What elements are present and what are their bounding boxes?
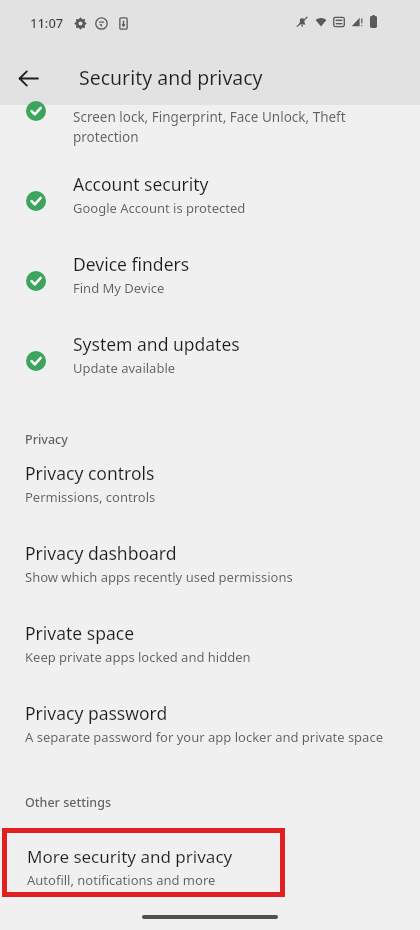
button[interactable]: Back <box>8 58 48 98</box>
button[interactable]: More security and privacy <box>7 833 280 892</box>
button[interactable]: Privacy controls <box>0 448 420 528</box>
staticText: More security and privacy <box>27 845 233 868</box>
staticText: Security and privacy <box>79 64 263 91</box>
staticText: Privacy controls <box>25 461 155 485</box>
staticText: Device finders <box>73 252 190 276</box>
staticText: Other settings <box>25 794 112 811</box>
staticText: Privacy <box>25 431 68 448</box>
staticText: Show which apps recently used permission… <box>25 568 293 586</box>
button[interactable]: Account security <box>0 160 420 240</box>
staticText: Update available <box>73 359 176 377</box>
button[interactable]: Privacy dashboard <box>0 528 420 608</box>
staticText: Screen lock, Fingerprint, Face Unlock, T… <box>73 108 346 146</box>
button[interactable]: Private space <box>0 608 420 688</box>
staticText: 11:07 <box>30 14 64 32</box>
button[interactable]: Privacy password <box>0 688 420 768</box>
staticText: Privacy dashboard <box>25 541 177 565</box>
button[interactable]: Device finders <box>0 240 420 320</box>
staticText: Keep private apps locked and hidden <box>25 648 251 666</box>
button[interactable]: System and updates <box>0 320 420 400</box>
button[interactable]: Screen lock, Fingerprint, Face Unlock, T… <box>0 105 420 160</box>
staticText: System and updates <box>73 332 240 356</box>
staticText: A separate password for your app locker … <box>25 728 383 746</box>
staticText: Account security <box>73 172 209 196</box>
staticText: Private space <box>25 621 135 645</box>
staticText: Autofill, notifications and more <box>27 871 216 889</box>
staticText: Find My Device <box>73 279 165 297</box>
staticText: Permissions, controls <box>25 488 156 506</box>
staticText: Privacy password <box>25 701 168 725</box>
staticText: Google Account is protected <box>73 199 246 217</box>
